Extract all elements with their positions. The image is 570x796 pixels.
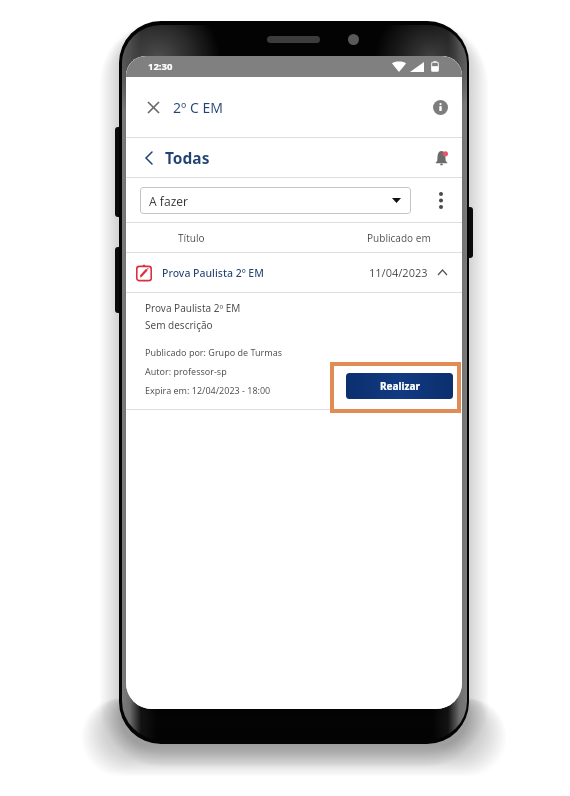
button[interactable]: More options <box>429 185 453 215</box>
staticText: Expira em: 12/04/2023 - 18:00 <box>145 384 271 396</box>
staticText: Prova Paulista 2º EM <box>145 301 241 315</box>
staticText: 2º C EM <box>173 98 223 117</box>
staticText: Autor: professor-sp <box>145 365 227 377</box>
staticText: Publicado por: Grupo de Turmas <box>145 346 283 358</box>
button[interactable]: Realizar <box>346 373 453 399</box>
staticText: 11/04/2023 <box>369 265 428 280</box>
staticText: Sem descrição <box>145 318 213 332</box>
staticText: Realizar <box>380 379 420 393</box>
button[interactable]: Back <box>139 148 159 168</box>
staticText: Todas <box>165 147 210 168</box>
staticText: Publicado em <box>367 231 431 245</box>
button[interactable]: Information <box>429 96 451 118</box>
button[interactable]: Notifications <box>430 147 452 169</box>
button[interactable]: Close <box>141 95 165 119</box>
staticText: Título <box>178 231 205 245</box>
staticText: 12:30 <box>148 60 173 73</box>
staticText: A fazer <box>149 193 189 209</box>
button[interactable]: A fazer <box>140 187 411 214</box>
button[interactable]: Prova Paulista 2º EM <box>126 253 462 292</box>
staticText: Prova Paulista 2º EM <box>162 266 264 280</box>
